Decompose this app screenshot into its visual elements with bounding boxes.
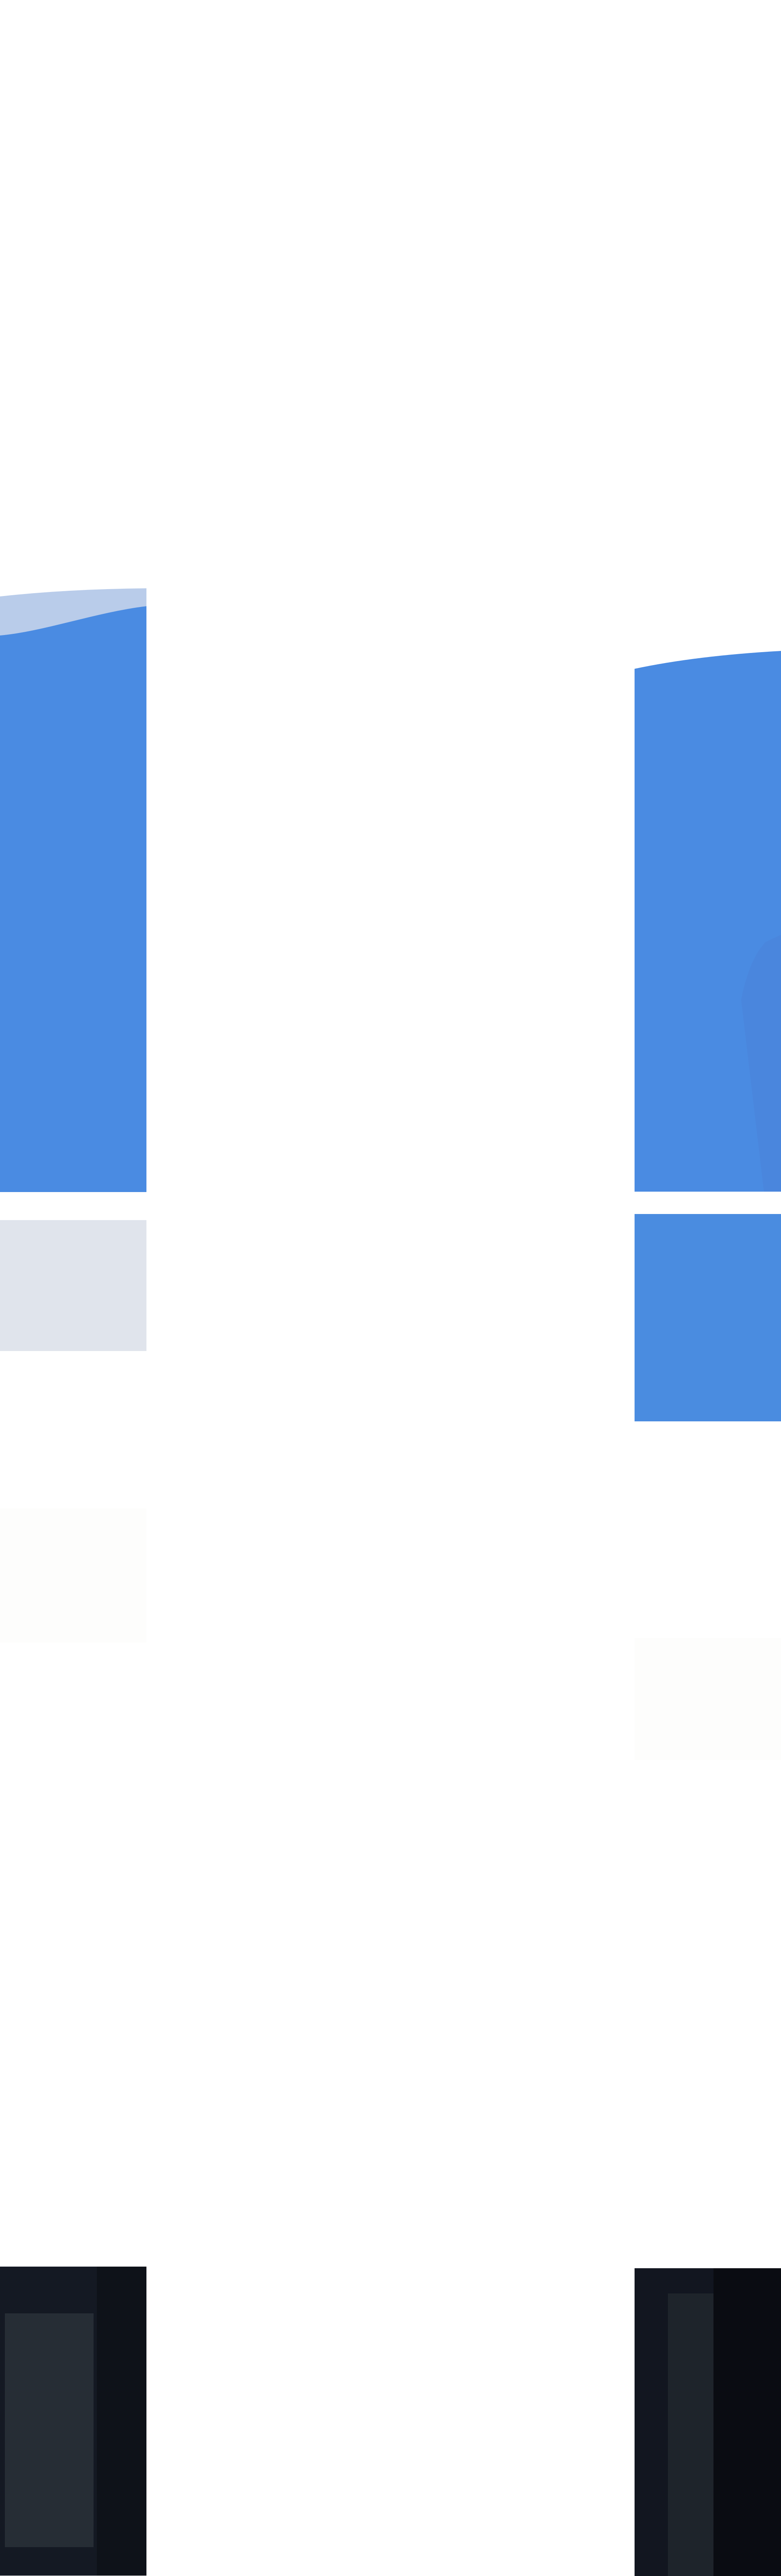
button[interactable]: Portrait photo	[635, 2268, 781, 2576]
button[interactable]: Blue photo	[635, 1214, 781, 1421]
button[interactable]: Desk photo	[0, 2267, 146, 2576]
button[interactable]: Skyscraper photo	[635, 650, 781, 1192]
button[interactable]: Blue sky photo	[0, 587, 146, 1192]
